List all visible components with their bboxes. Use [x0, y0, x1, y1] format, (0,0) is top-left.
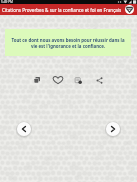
- button[interactable]: App badge: [125, 5, 134, 14]
- button[interactable]: Tout ce dont nous avons besoin pour réus…: [5, 29, 131, 56]
- staticText: 5:49 PM: [1, 0, 13, 4]
- button[interactable]: Share: [89, 72, 110, 88]
- button[interactable]: Previous quote: [16, 121, 32, 137]
- staticText: Citations Proverbes & sur la confiance e…: [2, 7, 122, 13]
- button[interactable]: Next quote: [105, 121, 121, 137]
- button[interactable]: Favorite: [47, 72, 68, 88]
- button[interactable]: Save image: [68, 72, 89, 88]
- staticText: Tout ce dont nous avons besoin pour réus…: [8, 37, 128, 49]
- button[interactable]: Copy: [26, 72, 47, 88]
